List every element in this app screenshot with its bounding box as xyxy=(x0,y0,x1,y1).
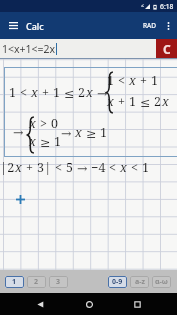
staticText: 3| xyxy=(37,159,52,176)
staticText: 5 xyxy=(66,159,74,176)
button[interactable]: Back xyxy=(33,293,47,315)
staticText: → xyxy=(61,126,72,141)
staticText: ≥ xyxy=(86,126,97,141)
staticText: x xyxy=(162,93,170,110)
staticText: 2 xyxy=(78,84,86,101)
staticText: −4 xyxy=(91,159,106,176)
staticText: 1 xyxy=(12,277,17,287)
staticText: < xyxy=(109,159,117,176)
staticText: 1 xyxy=(53,84,61,101)
staticText: 0-9 xyxy=(112,277,123,287)
staticText: < xyxy=(131,159,139,176)
staticText: 0 xyxy=(51,115,59,132)
staticText: x xyxy=(129,72,137,89)
staticText: x xyxy=(15,159,23,176)
button[interactable]: a-z xyxy=(130,276,149,288)
staticText: < xyxy=(20,84,28,101)
staticText: ≥ xyxy=(40,135,51,150)
staticText: x xyxy=(31,84,39,101)
staticText: Calc xyxy=(26,20,44,32)
staticText: 1 xyxy=(107,72,115,89)
staticText: 2 xyxy=(34,277,39,287)
staticText: 1 xyxy=(100,124,108,141)
staticText: 1 xyxy=(9,84,17,101)
button[interactable]: More options xyxy=(159,12,177,39)
staticText: ≤ xyxy=(64,86,75,101)
staticText: → xyxy=(97,86,108,101)
staticText: x xyxy=(29,115,37,132)
staticText: + xyxy=(118,93,126,110)
staticText: |2 xyxy=(0,159,15,176)
button[interactable]: 3 xyxy=(49,276,68,288)
staticText: > xyxy=(40,115,48,132)
staticText: → xyxy=(13,125,24,140)
staticText: x xyxy=(75,124,83,141)
staticText: 6:18 xyxy=(160,2,174,11)
button[interactable]: Navigation menu xyxy=(0,12,26,39)
button[interactable]: 1 xyxy=(5,276,24,288)
staticText: 1<x+1<=2x xyxy=(2,42,56,56)
button[interactable]: 2 xyxy=(27,276,46,288)
staticText: α-ω xyxy=(155,277,168,287)
staticText: ²⁶ xyxy=(141,4,145,10)
staticText: a-z xyxy=(135,277,145,287)
staticText: ≤ xyxy=(140,95,151,110)
staticText: < xyxy=(118,72,126,89)
staticText: + xyxy=(140,72,148,89)
staticText: + xyxy=(26,159,34,176)
staticText: x xyxy=(86,84,94,101)
staticText: 1 xyxy=(142,159,150,176)
button[interactable]: 0-9 xyxy=(108,276,127,288)
staticText: 2 xyxy=(154,93,162,110)
button[interactable]: Home xyxy=(82,293,96,315)
button[interactable] xyxy=(4,67,177,157)
staticText: x xyxy=(120,159,128,176)
button[interactable]: α-ω xyxy=(152,276,171,288)
staticText: < xyxy=(55,159,63,176)
staticText: C xyxy=(163,41,171,57)
staticText: → xyxy=(77,161,88,176)
button[interactable]: Recent apps xyxy=(130,293,144,315)
staticText: + xyxy=(42,84,50,101)
button[interactable]: C xyxy=(156,39,177,58)
staticText: 3 xyxy=(56,277,61,287)
staticText: x xyxy=(107,93,115,110)
staticText: RAD xyxy=(143,21,156,30)
button[interactable]: RAD xyxy=(140,12,159,39)
staticText: x xyxy=(29,133,37,150)
staticText: 1 xyxy=(151,72,159,89)
staticText: 1 xyxy=(129,93,137,110)
staticText: 1 xyxy=(54,133,62,150)
